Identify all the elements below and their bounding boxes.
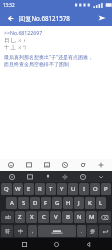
staticText: B — [66, 213, 70, 221]
staticText: 中 — [18, 228, 23, 234]
button[interactable]: I — [79, 183, 89, 195]
staticText: . — [81, 228, 83, 235]
staticText: Y — [60, 185, 64, 193]
staticText: N — [77, 213, 82, 221]
staticText: H — [66, 199, 71, 207]
button[interactable]: Recents — [16, 238, 32, 250]
button[interactable]: Emoji — [4, 159, 18, 171]
staticText: >>No.68122697 — [4, 29, 43, 36]
button[interactable]: . — [77, 225, 86, 237]
staticText: T — [49, 185, 53, 193]
staticText: 而且终查全局空格排不了图制 — [4, 61, 69, 67]
staticText: 13:32 — [3, 2, 15, 8]
button[interactable]: A — [6, 197, 17, 209]
button[interactable]: Send — [95, 11, 108, 24]
staticText: D — [33, 199, 38, 207]
button[interactable]: B — [62, 211, 73, 223]
staticText: Z — [18, 213, 22, 221]
staticText: E — [27, 185, 31, 193]
staticText: 符 — [5, 228, 10, 234]
staticText: 回复No.68121578 — [19, 14, 70, 22]
staticText: Q — [4, 185, 9, 193]
staticText: L — [99, 199, 103, 207]
staticText: ab — [5, 214, 11, 221]
button[interactable]: 符 — [1, 225, 13, 237]
staticText: V — [54, 213, 58, 221]
staticText: , — [32, 228, 34, 235]
button[interactable]: W — [13, 183, 23, 195]
button[interactable]: E — [24, 183, 34, 195]
staticText: 十 丄 ㄨㄅ — [4, 43, 28, 50]
staticText: F — [44, 199, 48, 207]
staticText: U — [71, 185, 76, 193]
staticText: J — [78, 199, 80, 207]
button[interactable]: 拼 — [87, 225, 98, 237]
button[interactable]: N — [74, 211, 85, 223]
button[interactable]: U — [68, 183, 78, 195]
button[interactable]: Clipboard — [5, 171, 18, 182]
button[interactable]: Translate — [58, 171, 71, 182]
button[interactable]: R — [35, 183, 45, 195]
button[interactable]: Back — [4, 12, 16, 24]
staticText: O — [93, 185, 98, 193]
staticText: S — [22, 199, 26, 207]
button[interactable]: D — [30, 197, 40, 209]
button[interactable]: Layout — [23, 171, 36, 182]
button[interactable]: V — [50, 211, 61, 223]
button[interactable]: Collapse — [94, 171, 107, 182]
staticText: A — [10, 199, 14, 207]
button[interactable]: Q — [1, 183, 12, 195]
button[interactable]: Z — [15, 211, 25, 223]
button[interactable]: F — [41, 197, 51, 209]
button[interactable]: Image — [22, 159, 36, 171]
button[interactable]: T — [46, 183, 56, 195]
button[interactable]: Sticker — [76, 159, 90, 171]
button[interactable]: Y — [57, 183, 67, 195]
button[interactable]: Backspace — [98, 211, 111, 223]
button[interactable]: L — [96, 197, 106, 209]
button[interactable]: G — [52, 197, 62, 209]
button[interactable]: P — [101, 183, 111, 195]
staticText: C — [42, 213, 46, 221]
button[interactable]: , — [28, 225, 37, 237]
staticText: P — [104, 185, 108, 193]
button[interactable]: Theme — [58, 159, 72, 171]
button[interactable]: Enter — [99, 225, 111, 237]
staticText: 拼 — [90, 228, 95, 234]
button[interactable]: More — [94, 159, 108, 171]
staticText: X — [30, 213, 34, 221]
button[interactable]: S — [18, 197, 29, 209]
staticText: W — [15, 185, 21, 193]
button[interactable]: Voice — [41, 171, 54, 182]
button[interactable]: M — [86, 211, 97, 223]
button[interactable]: Home — [48, 238, 64, 250]
button[interactable]: Back — [80, 238, 96, 250]
staticText: K — [88, 199, 92, 207]
button[interactable]: Settings — [76, 171, 89, 182]
button[interactable]: H — [63, 197, 73, 209]
button[interactable]: Space — [38, 225, 76, 237]
staticText: M — [89, 213, 95, 221]
button[interactable]: K — [85, 197, 95, 209]
staticText: R — [38, 185, 42, 193]
button[interactable]: ab — [1, 211, 14, 223]
button[interactable]: Card — [40, 159, 54, 171]
button[interactable]: C — [38, 211, 49, 223]
button[interactable]: X — [26, 211, 37, 223]
button[interactable]: O — [90, 183, 100, 195]
staticText: G — [55, 199, 60, 207]
button[interactable]: 中 — [14, 225, 27, 237]
staticText: I — [83, 185, 86, 193]
staticText: 日 乚 ㄨ › — [4, 36, 26, 43]
staticText: 最后再列那名想奏出"子"还是有点困难， — [4, 54, 94, 61]
button[interactable]: J — [74, 197, 84, 209]
